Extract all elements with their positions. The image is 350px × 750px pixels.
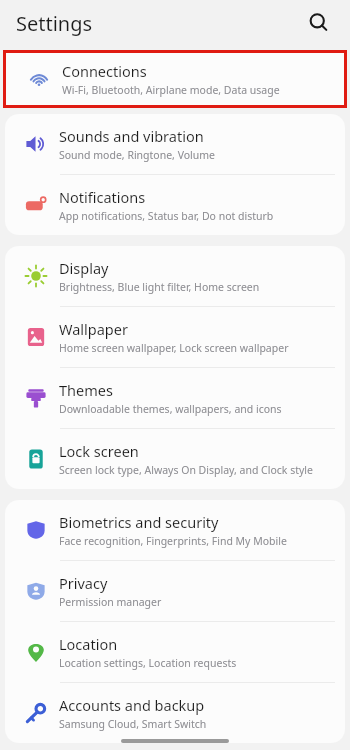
staticText: Face recognition, Fingerprints, Find My … bbox=[59, 534, 287, 548]
button[interactable]: Search bbox=[302, 6, 336, 40]
staticText: Home screen wallpaper, Lock screen wallp… bbox=[59, 341, 289, 355]
staticText: Display bbox=[59, 258, 109, 278]
button[interactable]: Sounds and vibration bbox=[5, 114, 345, 174]
button[interactable]: Lock screen bbox=[5, 429, 345, 489]
staticText: Privacy bbox=[59, 573, 108, 593]
staticText: Location settings, Location requests bbox=[59, 656, 237, 670]
staticText: Wi-Fi, Bluetooth, Airplane mode, Data us… bbox=[62, 83, 280, 97]
button[interactable]: Wallpaper bbox=[5, 307, 345, 367]
staticText: Location bbox=[59, 634, 118, 654]
staticText: Accounts and backup bbox=[59, 695, 205, 715]
button[interactable]: Themes bbox=[5, 368, 345, 428]
staticText: Connections bbox=[62, 61, 147, 81]
staticText: Wallpaper bbox=[59, 319, 128, 339]
staticText: Sound mode, Ringtone, Volume bbox=[59, 148, 216, 162]
staticText: App notifications, Status bar, Do not di… bbox=[59, 209, 274, 223]
staticText: Notifications bbox=[59, 187, 146, 207]
button[interactable]: Accounts and backup bbox=[5, 683, 345, 743]
button[interactable]: Biometrics and security bbox=[5, 500, 345, 560]
button[interactable]: Privacy bbox=[5, 561, 345, 621]
staticText: Biometrics and security bbox=[59, 512, 219, 532]
button[interactable]: Location bbox=[5, 622, 345, 682]
button[interactable]: Notifications bbox=[5, 175, 345, 235]
staticText: Screen lock type, Always On Display, and… bbox=[59, 463, 313, 477]
staticText: Permission manager bbox=[59, 595, 162, 609]
button[interactable]: Display bbox=[5, 246, 345, 306]
staticText: Samsung Cloud, Smart Switch bbox=[59, 717, 207, 731]
button[interactable]: Connections bbox=[6, 53, 344, 105]
staticText: Brightness, Blue light filter, Home scre… bbox=[59, 280, 260, 294]
staticText: Settings bbox=[16, 10, 93, 37]
staticText: Sounds and vibration bbox=[59, 126, 204, 146]
staticText: Downloadable themes, wallpapers, and ico… bbox=[59, 402, 282, 416]
staticText: Themes bbox=[59, 380, 113, 400]
staticText: Lock screen bbox=[59, 441, 139, 461]
